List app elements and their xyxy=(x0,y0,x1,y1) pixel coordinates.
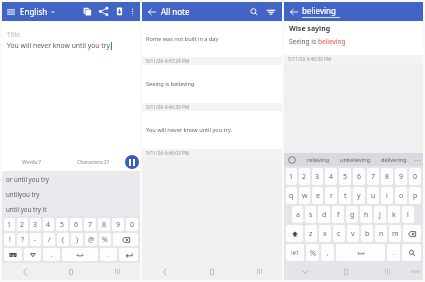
button[interactable]: 7 xyxy=(367,168,379,185)
button[interactable]: 4 xyxy=(43,218,54,231)
button[interactable]: y xyxy=(353,187,365,204)
button[interactable]: Enter xyxy=(119,248,138,261)
button[interactable]: until you try it xyxy=(2,201,140,216)
button[interactable]: Keyboard xyxy=(4,248,22,261)
button[interactable]: 8 xyxy=(98,218,110,231)
button[interactable]: You will never know until you try. xyxy=(142,111,282,157)
button[interactable]: . xyxy=(387,244,400,261)
button[interactable]: More options xyxy=(127,5,138,18)
button[interactable]: Back xyxy=(142,263,188,280)
button[interactable]: Copy xyxy=(81,5,94,18)
button[interactable]: Hide keyboard xyxy=(284,263,325,280)
button[interactable]: Recents xyxy=(366,263,407,280)
button[interactable]: ? xyxy=(17,233,28,246)
button[interactable]: 2 xyxy=(17,218,28,231)
button[interactable]: g xyxy=(346,206,358,223)
button[interactable]: Back xyxy=(146,6,158,18)
button[interactable]: Collapse xyxy=(24,248,41,261)
button[interactable]: 8 xyxy=(381,168,393,185)
button[interactable]: More suggestions xyxy=(414,156,420,163)
button[interactable]: n xyxy=(375,225,387,242)
button[interactable]: Search xyxy=(248,6,260,18)
button[interactable]: untilyou try xyxy=(2,186,140,201)
button[interactable]: 9 xyxy=(395,168,407,185)
button[interactable]: m xyxy=(389,225,401,242)
button[interactable]: 6 xyxy=(70,218,82,231)
button[interactable]: - xyxy=(30,233,41,246)
button[interactable]: c xyxy=(333,225,345,242)
button[interactable]: Back xyxy=(288,6,300,18)
button[interactable]: or until you try xyxy=(2,171,140,186)
button[interactable]: Home xyxy=(48,263,94,280)
button[interactable]: ) xyxy=(71,233,83,246)
button[interactable]: 0 xyxy=(409,168,421,185)
button[interactable]: 4 xyxy=(325,168,337,185)
button[interactable]: / xyxy=(43,233,55,246)
button[interactable]: Keyboard layout xyxy=(407,263,423,280)
button[interactable]: Backspace xyxy=(113,233,138,246)
button[interactable]: 2 xyxy=(299,168,310,185)
button[interactable]: 1 xyxy=(4,218,15,231)
button[interactable]: Emoji xyxy=(287,155,296,164)
button[interactable]: s xyxy=(305,206,316,223)
button[interactable]: i xyxy=(381,187,393,204)
button[interactable]: believing xyxy=(302,5,340,18)
button[interactable]: Search xyxy=(402,244,421,261)
button[interactable]: 3 xyxy=(312,168,323,185)
button[interactable]: , xyxy=(321,244,334,261)
button[interactable]: 1 xyxy=(286,168,297,185)
button[interactable]: delivering xyxy=(381,156,407,163)
button[interactable]: ! xyxy=(4,233,15,246)
button[interactable]: 5 xyxy=(56,218,68,231)
button[interactable]: a xyxy=(292,206,303,223)
button[interactable]: Home xyxy=(188,263,235,280)
button[interactable]: l xyxy=(402,206,414,223)
button[interactable]: unbelieving xyxy=(340,156,371,163)
button[interactable]: r xyxy=(325,187,337,204)
button[interactable]: Sort xyxy=(265,6,277,18)
button[interactable]: x xyxy=(319,225,331,242)
button[interactable]: Rome was not built in a day xyxy=(142,21,282,65)
button[interactable]: q xyxy=(286,187,297,204)
button[interactable]: u xyxy=(367,187,379,204)
button[interactable]: p xyxy=(409,187,421,204)
button[interactable]: Back xyxy=(2,263,48,280)
button[interactable]: @ xyxy=(85,233,97,246)
button[interactable]: Menu xyxy=(5,6,17,18)
button[interactable]: 5 xyxy=(339,168,351,185)
button[interactable]: o xyxy=(395,187,407,204)
button[interactable]: 3 xyxy=(30,218,41,231)
button[interactable]: Shift xyxy=(286,225,303,242)
button[interactable]: relieving xyxy=(307,156,330,163)
button[interactable]: 6 xyxy=(353,168,365,185)
button[interactable]: h xyxy=(360,206,372,223)
button[interactable]: Pause xyxy=(125,155,139,169)
button[interactable]: Share xyxy=(97,5,110,18)
button[interactable]: Save xyxy=(113,5,126,18)
button[interactable]: Home xyxy=(325,263,366,280)
button[interactable]: Backspace xyxy=(403,225,421,242)
button[interactable]: 9 xyxy=(112,218,124,231)
button[interactable]: 0 xyxy=(126,218,138,231)
button[interactable]: , xyxy=(43,248,60,261)
button[interactable]: z xyxy=(305,225,317,242)
button[interactable]: t xyxy=(339,187,351,204)
button[interactable]: !#1 xyxy=(286,244,304,261)
button[interactable]: w xyxy=(299,187,310,204)
button[interactable]: Recents xyxy=(235,263,282,280)
button[interactable]: v xyxy=(347,225,359,242)
button[interactable]: ( xyxy=(57,233,69,246)
button[interactable]: Recents xyxy=(94,263,140,280)
button[interactable]: Symbols xyxy=(306,244,319,261)
button[interactable]: Seeing is believing xyxy=(142,65,282,111)
button[interactable]: f xyxy=(332,206,344,223)
button[interactable]: b xyxy=(361,225,373,242)
button[interactable]: k xyxy=(388,206,400,223)
button[interactable]: d xyxy=(318,206,330,223)
button[interactable]: 7 xyxy=(84,218,96,231)
button[interactable]: Space xyxy=(62,248,98,261)
button[interactable]: . xyxy=(100,248,117,261)
button[interactable]: e xyxy=(312,187,323,204)
button[interactable]: Space xyxy=(336,244,385,261)
button[interactable]: % xyxy=(99,233,111,246)
